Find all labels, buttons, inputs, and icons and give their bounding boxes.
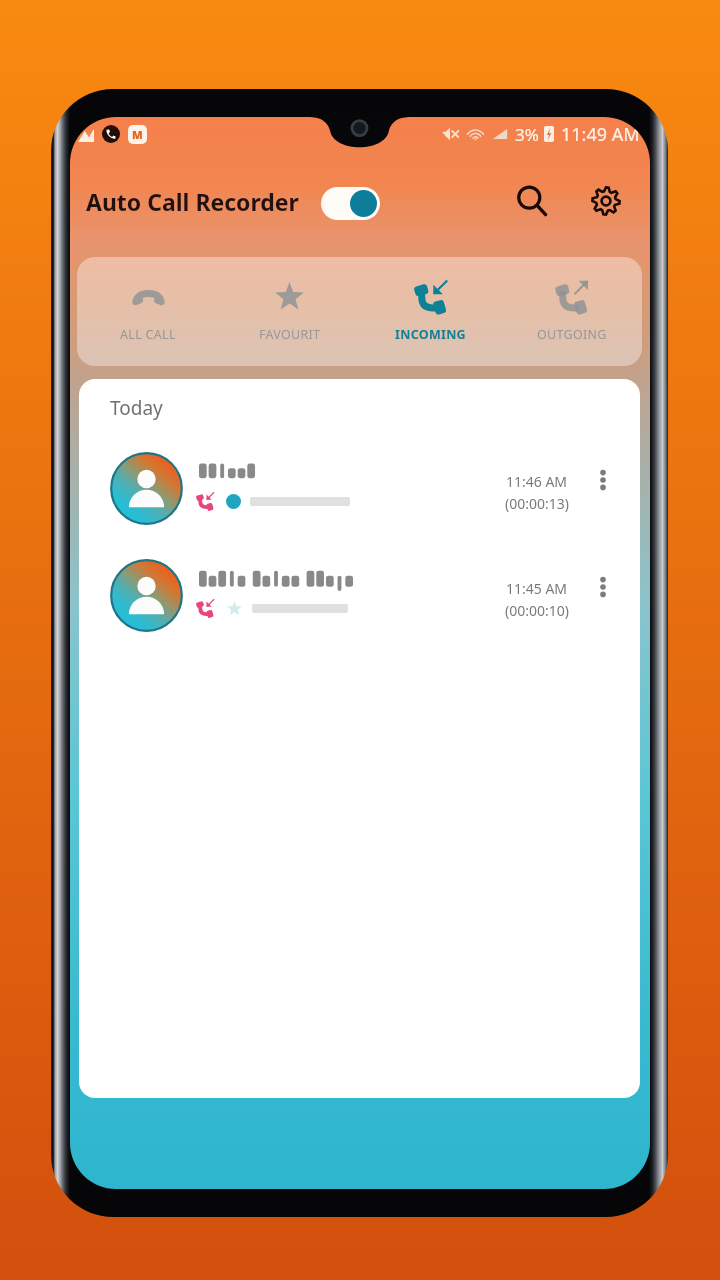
staticText: M xyxy=(132,127,143,142)
staticText: 11:49 AM xyxy=(561,122,640,147)
staticText: (00:00:13) xyxy=(505,494,569,513)
staticText: ALL CALL xyxy=(120,326,176,343)
button[interactable]: Search xyxy=(510,179,554,223)
button[interactable]: ALL CALL xyxy=(77,257,219,366)
button[interactable]: Recording toggle xyxy=(321,187,380,220)
staticText: 11:46 AM xyxy=(506,472,568,491)
staticText: (00:00:10) xyxy=(505,601,569,620)
staticText: Auto Call Recorder xyxy=(86,186,299,217)
staticText: 11:45 AM xyxy=(506,579,568,598)
button[interactable]: INCOMING xyxy=(360,257,501,366)
staticText: FAVOURIT xyxy=(259,326,321,343)
button[interactable]: More options xyxy=(587,571,619,603)
button[interactable]: FAVOURIT xyxy=(219,257,360,366)
button[interactable]: 11:46 AM xyxy=(79,450,640,528)
staticText: INCOMING xyxy=(395,326,466,343)
button[interactable]: OUTGOING xyxy=(501,257,642,366)
staticText: OUTGOING xyxy=(537,326,607,343)
staticText: Today xyxy=(110,395,163,421)
button[interactable]: Settings xyxy=(584,179,628,223)
button[interactable]: 11:45 AM xyxy=(79,557,640,635)
staticText: 3% xyxy=(515,123,539,146)
button[interactable]: More options xyxy=(587,464,619,496)
